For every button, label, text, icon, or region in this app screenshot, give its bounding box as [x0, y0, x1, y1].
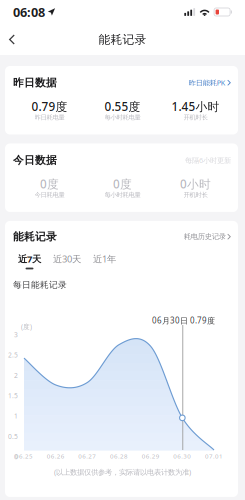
staticText: 0度: [113, 176, 132, 192]
staticText: 昨日数据: [13, 76, 57, 89]
staticText: 1: [14, 411, 18, 421]
staticText: 0: [14, 452, 18, 461]
staticText: 2.5: [8, 350, 18, 360]
staticText: 0度: [40, 176, 59, 192]
staticText: 2: [14, 371, 18, 380]
staticText: 昨日能耗PK: [189, 78, 226, 88]
staticText: 0.55度: [104, 98, 140, 114]
staticText: 3: [14, 330, 18, 339]
button[interactable]: 近30天: [47, 252, 87, 269]
staticText: 0.79度: [31, 98, 67, 114]
staticText: 06.29: [142, 452, 160, 460]
button[interactable]: 近1年: [87, 252, 122, 269]
staticText: 1.45小时: [171, 98, 219, 114]
staticText: 近7天: [18, 252, 41, 265]
staticText: 06.27: [78, 452, 96, 460]
staticText: 06.26: [47, 452, 65, 460]
staticText: (度): [21, 322, 32, 331]
staticText: 耗电历史记录: [184, 232, 226, 241]
staticText: 0.5: [8, 432, 18, 441]
staticText: 06.30: [173, 452, 191, 460]
staticText: 近1年: [93, 252, 116, 265]
staticText: 06.25: [15, 452, 33, 460]
staticText: 1.5: [8, 391, 18, 400]
staticText: 昨日耗电量: [34, 113, 64, 121]
button[interactable]: 昨日能耗PK: [189, 78, 231, 88]
staticText: 能耗记录: [98, 32, 146, 47]
button[interactable]: 近7天: [12, 252, 47, 269]
button[interactable]: 耗电历史记录: [184, 232, 231, 241]
staticText: 07.01: [205, 452, 223, 460]
staticText: 开机时长: [183, 113, 207, 121]
staticText: 今日数据: [13, 153, 57, 167]
button[interactable]: Back: [0, 26, 27, 53]
staticText: 06月30日 0.79度: [152, 315, 215, 326]
staticText: 06.28: [110, 452, 128, 460]
staticText: 开机时长: [183, 191, 207, 199]
staticText: 每日能耗记录: [13, 279, 67, 290]
staticText: 06:08: [13, 3, 45, 21]
staticText: 每小时耗电量: [104, 113, 140, 121]
staticText: 0小时: [180, 176, 211, 192]
staticText: 每隔6小时更新: [185, 155, 231, 165]
staticText: 能耗记录: [13, 230, 57, 243]
staticText: (以上数据仅供参考，实际请以电表计数为准): [54, 467, 191, 477]
staticText: 今日耗电量: [34, 191, 64, 199]
staticText: 每小时耗电量: [104, 191, 140, 199]
staticText: 近30天: [53, 252, 81, 265]
